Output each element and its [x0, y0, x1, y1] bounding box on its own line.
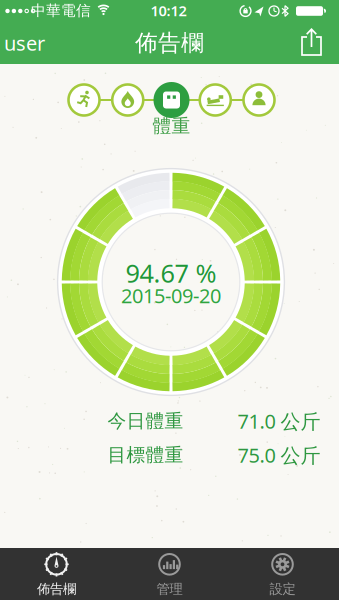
- button[interactable]: [110, 82, 146, 118]
- staticText: 目標體重: [107, 443, 183, 466]
- staticText: 佈告欄: [37, 581, 76, 597]
- staticText: 管理: [156, 581, 182, 597]
- staticText: user: [4, 30, 45, 56]
- staticText: 體重: [152, 114, 190, 137]
- button[interactable]: [294, 26, 328, 60]
- staticText: 75.0 公斤: [237, 442, 320, 468]
- button[interactable]: [197, 82, 233, 118]
- staticText: 設定: [269, 581, 295, 597]
- button[interactable]: 管理: [113, 549, 226, 599]
- button[interactable]: 設定: [226, 549, 339, 599]
- staticText: 2015-09-20: [121, 282, 221, 309]
- staticText: 今日體重: [107, 409, 183, 432]
- staticText: 佈告欄: [135, 29, 204, 57]
- staticText: 94.67 %: [125, 256, 216, 290]
- staticText: 中華電信: [31, 1, 91, 19]
- button[interactable]: 佈告欄: [0, 549, 113, 599]
- button[interactable]: [66, 82, 102, 118]
- button[interactable]: [152, 81, 190, 119]
- staticText: 71.0 公斤: [237, 408, 320, 434]
- staticText: 10:12: [150, 1, 186, 20]
- button[interactable]: user: [2, 28, 46, 58]
- button[interactable]: [241, 82, 277, 118]
